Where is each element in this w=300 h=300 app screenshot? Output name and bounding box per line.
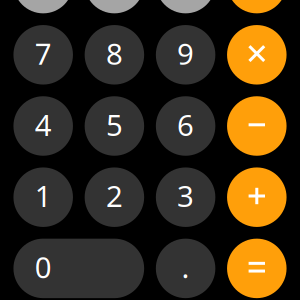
staticText: 9 <box>177 34 194 73</box>
button[interactable]: 5 <box>85 96 144 156</box>
staticText: 0 <box>35 247 52 286</box>
button[interactable]: 3 <box>156 167 215 227</box>
button[interactable]: Multiply <box>227 25 287 84</box>
button[interactable]: % <box>156 0 215 13</box>
button[interactable]: Add <box>227 167 287 227</box>
button[interactable]: AC <box>13 0 73 13</box>
button[interactable]: 9 <box>156 25 215 84</box>
staticText: . <box>182 247 190 286</box>
staticText: 7 <box>35 34 52 73</box>
staticText: 8 <box>106 34 123 73</box>
staticText: 5 <box>106 105 123 144</box>
staticText: 3 <box>177 176 194 215</box>
button[interactable]: 4 <box>13 96 73 156</box>
staticText: 1 <box>35 176 52 215</box>
button[interactable]: Equals <box>227 239 286 298</box>
button[interactable]: Subtract <box>227 96 287 156</box>
button[interactable]: 6 <box>156 96 215 156</box>
button[interactable]: 1 <box>13 167 73 227</box>
button[interactable]: . <box>156 239 215 298</box>
button[interactable]: 0 <box>13 239 144 298</box>
button[interactable]: 2 <box>85 167 144 227</box>
staticText: 6 <box>177 105 194 144</box>
button[interactable]: Divide <box>227 0 287 13</box>
staticText: 2 <box>106 176 123 215</box>
staticText: 4 <box>35 105 52 144</box>
button[interactable]: 7 <box>13 25 73 84</box>
button[interactable]: +/− <box>85 0 144 13</box>
button[interactable]: 8 <box>85 25 144 84</box>
